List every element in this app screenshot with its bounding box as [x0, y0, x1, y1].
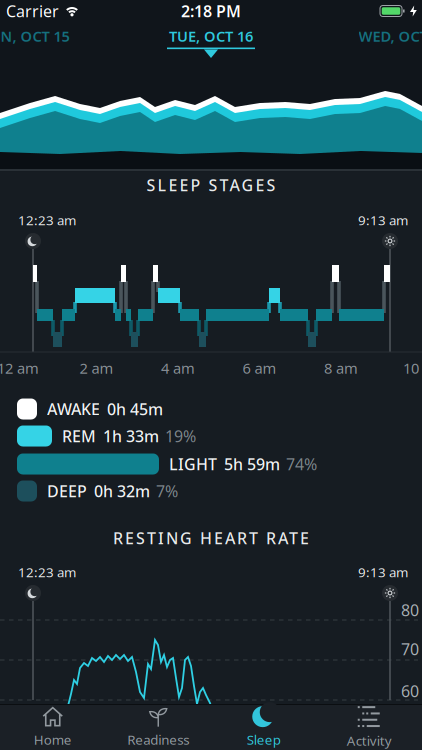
- staticText: 9:13 am: [358, 211, 408, 229]
- button[interactable]: MON, OCT 15: [0, 26, 69, 46]
- staticText: 6 am: [242, 358, 276, 378]
- button[interactable]: TUE, OCT 16: [169, 26, 253, 46]
- staticText: 19%: [165, 425, 196, 447]
- staticText: 12:23 am: [18, 563, 76, 581]
- staticText: Activity: [347, 732, 392, 749]
- staticText: MON, OCT 15: [0, 26, 69, 46]
- staticText: 1h 33m: [103, 425, 159, 447]
- staticText: WED, OCT 17: [358, 26, 422, 46]
- staticText: 70: [401, 638, 419, 660]
- button[interactable]: Home: [0, 706, 105, 748]
- staticText: 80: [401, 599, 419, 621]
- staticText: 2 am: [79, 358, 113, 378]
- staticText: 9:13 am: [358, 563, 408, 581]
- staticText: 4 am: [161, 358, 195, 378]
- button[interactable]: WED, OCT 17: [358, 26, 422, 46]
- staticText: 5h 59m: [224, 453, 280, 475]
- staticText: 0h 32m: [94, 480, 150, 502]
- staticText: 2:18 PM: [181, 0, 241, 22]
- button[interactable]: Readiness: [105, 706, 211, 748]
- staticText: AWAKE: [47, 398, 100, 420]
- staticText: DEEP: [47, 480, 87, 502]
- staticText: 10 am: [403, 358, 422, 378]
- staticText: Sleep: [247, 731, 281, 748]
- staticText: 12 am: [0, 358, 39, 378]
- button[interactable]: Sleep: [211, 706, 316, 748]
- staticText: 60: [401, 680, 419, 702]
- staticText: Readiness: [127, 731, 189, 748]
- staticText: SLEEP STAGES: [146, 174, 275, 196]
- staticText: Home: [34, 731, 72, 748]
- staticText: TUE, OCT 16: [169, 26, 253, 46]
- staticText: 8 am: [324, 358, 358, 378]
- staticText: Carrier: [6, 0, 59, 22]
- staticText: 0h 45m: [107, 398, 163, 420]
- staticText: 7%: [156, 480, 178, 502]
- staticText: LIGHT: [169, 453, 217, 475]
- staticText: 74%: [286, 453, 317, 475]
- staticText: RESTING HEART RATE: [113, 527, 309, 549]
- staticText: REM: [62, 425, 96, 447]
- button[interactable]: Activity: [316, 705, 422, 749]
- staticText: 12:23 am: [18, 211, 76, 229]
